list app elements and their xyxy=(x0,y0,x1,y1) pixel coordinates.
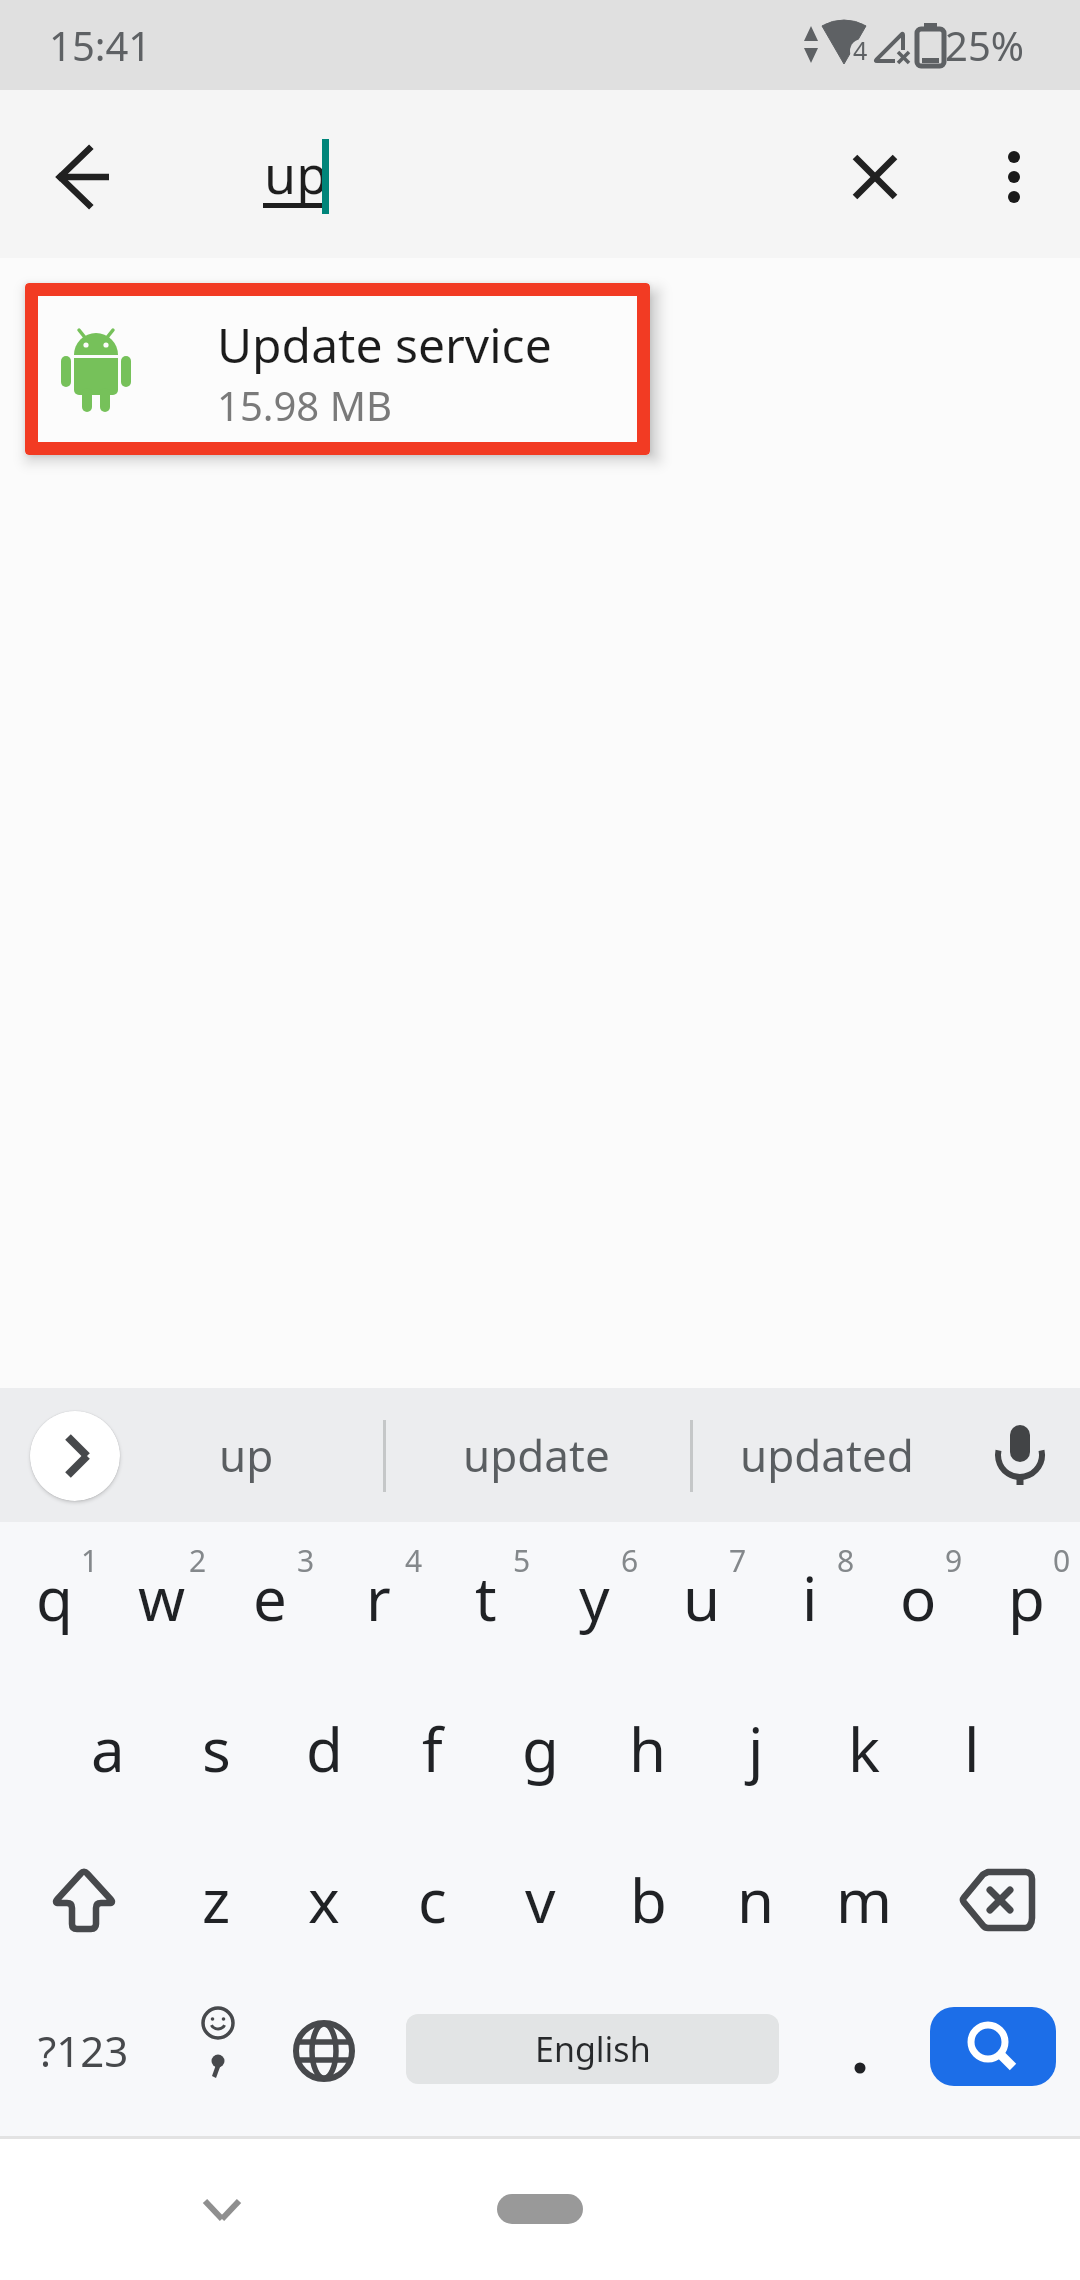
button[interactable]: x xyxy=(270,1824,378,1975)
staticText: 5 xyxy=(513,1540,531,1581)
button[interactable] xyxy=(30,1411,120,1501)
staticText: w xyxy=(138,1557,186,1639)
staticText: up xyxy=(264,138,329,209)
staticText: 25% xyxy=(945,18,1024,72)
button[interactable]: update xyxy=(393,1400,680,1510)
button[interactable]: q xyxy=(0,1522,108,1673)
staticText: English xyxy=(535,2026,651,2072)
button[interactable]: b xyxy=(594,1824,702,1975)
staticText: 7 xyxy=(729,1540,747,1581)
staticText: 15:41 xyxy=(49,18,152,72)
button[interactable]: k xyxy=(810,1673,918,1824)
button[interactable] xyxy=(5,1824,162,1975)
button[interactable]: a xyxy=(54,1673,162,1824)
button[interactable]: n xyxy=(702,1824,810,1975)
staticText: up xyxy=(219,1425,274,1485)
button[interactable]: s xyxy=(162,1673,270,1824)
staticText: l xyxy=(964,1708,980,1790)
staticText: q xyxy=(36,1557,73,1639)
staticText: 8 xyxy=(837,1540,855,1581)
staticText: updated xyxy=(740,1425,914,1485)
staticText: s xyxy=(202,1708,231,1790)
staticText: 15.98 MB xyxy=(217,378,392,432)
button[interactable]: up xyxy=(150,1400,343,1510)
button[interactable]: d xyxy=(270,1673,378,1824)
button[interactable]: j xyxy=(702,1673,810,1824)
button[interactable] xyxy=(173,2159,271,2257)
button[interactable]: w xyxy=(108,1522,216,1673)
button[interactable]: English xyxy=(406,2014,779,2084)
staticText: j xyxy=(748,1708,764,1790)
button[interactable]: r xyxy=(324,1522,432,1673)
staticText: a xyxy=(91,1708,125,1790)
staticText: h xyxy=(629,1708,667,1790)
button[interactable]: ?123 xyxy=(5,1975,162,2126)
staticText: 4 xyxy=(405,1540,423,1581)
button[interactable] xyxy=(0,90,1080,258)
staticText: Update service xyxy=(217,312,552,377)
button[interactable]: e xyxy=(216,1522,324,1673)
button[interactable]: f xyxy=(378,1673,486,1824)
button[interactable] xyxy=(36,128,134,226)
button[interactable] xyxy=(971,1406,1069,1504)
staticText: m xyxy=(836,1859,893,1941)
button[interactable]: updated xyxy=(700,1400,954,1510)
button[interactable]: c xyxy=(378,1824,486,1975)
button[interactable] xyxy=(930,2007,1056,2086)
staticText: 9 xyxy=(945,1540,963,1581)
staticText: 6 xyxy=(621,1540,639,1581)
button[interactable]: g xyxy=(486,1673,594,1824)
staticText: e xyxy=(253,1557,287,1639)
staticText: b xyxy=(630,1859,667,1941)
button[interactable]: o xyxy=(864,1522,972,1673)
staticText: d xyxy=(306,1708,343,1790)
staticText: o xyxy=(900,1557,937,1639)
button[interactable]: p xyxy=(972,1522,1080,1673)
button[interactable]: v xyxy=(486,1824,594,1975)
button[interactable] xyxy=(497,2194,583,2224)
staticText: t xyxy=(475,1557,497,1639)
button[interactable] xyxy=(806,1975,914,2126)
staticText: update xyxy=(463,1425,610,1485)
button[interactable]: u xyxy=(648,1522,756,1673)
staticText: x xyxy=(308,1859,340,1941)
button[interactable] xyxy=(826,128,924,226)
staticText: 3 xyxy=(297,1540,315,1581)
staticText: v xyxy=(525,1859,556,1941)
staticText: i xyxy=(802,1557,818,1639)
staticText: 2 xyxy=(189,1540,207,1581)
button[interactable]: l xyxy=(918,1673,1026,1824)
staticText: p xyxy=(1008,1557,1045,1639)
staticText: 1 xyxy=(81,1540,99,1581)
button[interactable]: i xyxy=(756,1522,864,1673)
button[interactable]: z xyxy=(162,1824,270,1975)
button[interactable]: t xyxy=(432,1522,540,1673)
button[interactable] xyxy=(164,1975,272,2126)
staticText: k xyxy=(848,1708,881,1790)
staticText: y xyxy=(579,1557,610,1639)
button[interactable] xyxy=(965,128,1063,226)
button[interactable]: y xyxy=(540,1522,648,1673)
staticText: n xyxy=(737,1859,775,1941)
staticText: 4 xyxy=(853,33,868,67)
staticText: u xyxy=(683,1557,721,1639)
button[interactable] xyxy=(270,1975,378,2126)
staticText: c xyxy=(418,1859,447,1941)
button[interactable] xyxy=(918,1824,1075,1975)
button[interactable] xyxy=(25,283,650,455)
staticText: r xyxy=(366,1557,391,1639)
staticText: z xyxy=(202,1859,231,1941)
staticText: 0 xyxy=(1053,1540,1071,1581)
staticText: f xyxy=(422,1708,443,1790)
staticText: g xyxy=(522,1708,559,1790)
button[interactable]: h xyxy=(594,1673,702,1824)
staticText: ?123 xyxy=(38,2022,129,2079)
button[interactable]: m xyxy=(810,1824,918,1975)
